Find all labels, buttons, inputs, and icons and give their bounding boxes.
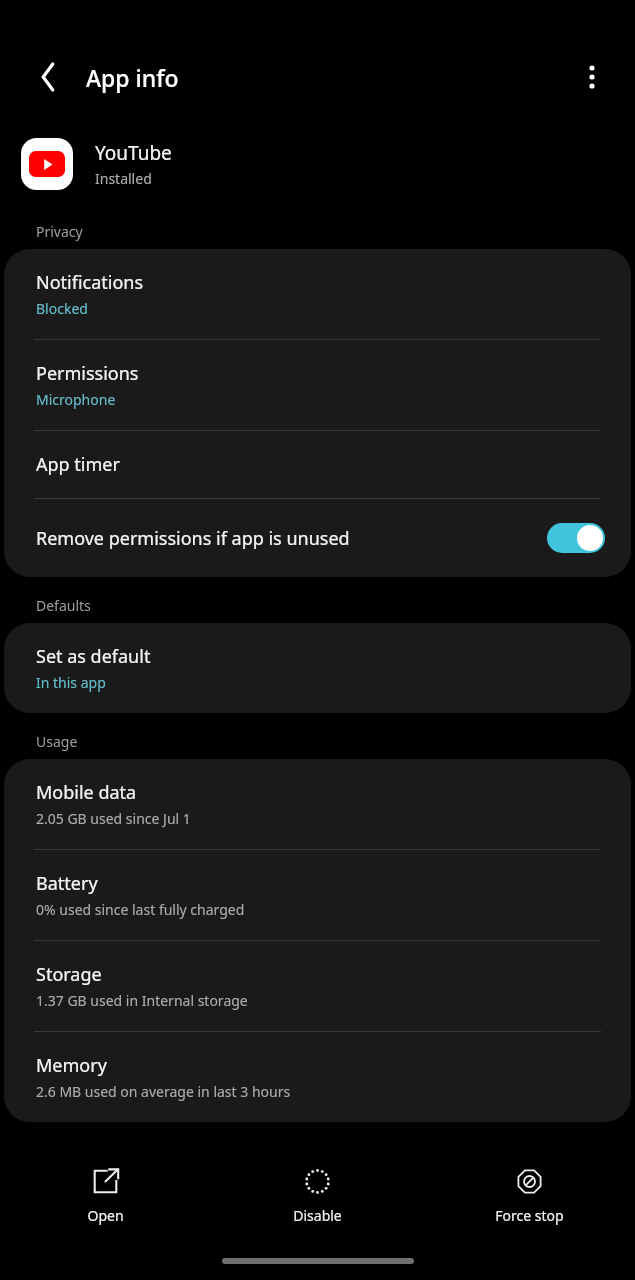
button[interactable]: Set as default	[4, 623, 631, 713]
staticText: Blocked	[36, 299, 88, 318]
staticText: Disable	[293, 1206, 342, 1225]
staticText: Mobile data	[36, 780, 137, 805]
button[interactable]: Remove permissions if app is unused	[4, 499, 631, 577]
staticText: Open	[87, 1206, 124, 1225]
staticText: Force stop	[495, 1206, 564, 1225]
staticText: 0% used since last fully charged	[36, 900, 245, 919]
other: Disable	[304, 1168, 331, 1195]
button[interactable]: Back	[25, 54, 71, 100]
button[interactable]: App timer	[4, 431, 631, 498]
staticText: App timer	[36, 452, 120, 477]
button[interactable]: Mobile data	[4, 759, 631, 849]
button[interactable]: Permissions	[4, 340, 631, 430]
staticText: In this app	[36, 673, 106, 692]
button[interactable]: More options	[569, 54, 615, 100]
staticText: Privacy	[36, 222, 83, 241]
staticText: YouTube	[95, 140, 172, 166]
button[interactable]: Battery	[4, 850, 631, 940]
staticText: Microphone	[36, 390, 116, 409]
staticText: App info	[86, 62, 179, 93]
button[interactable]: Force stop	[423, 1162, 635, 1231]
staticText: Defaults	[36, 596, 91, 615]
other: Force stop	[516, 1168, 543, 1195]
button[interactable]: Notifications	[4, 249, 631, 339]
staticText: Permissions	[36, 361, 139, 386]
staticText: Remove permissions if app is unused	[36, 526, 547, 551]
staticText: Storage	[36, 962, 102, 987]
staticText: Notifications	[36, 270, 144, 295]
staticText: Set as default	[36, 644, 151, 669]
button[interactable]: Disable	[211, 1162, 423, 1231]
other: Open	[92, 1168, 119, 1195]
button[interactable]: Memory	[4, 1032, 631, 1122]
staticText: 1.37 GB used in Internal storage	[36, 991, 248, 1010]
button[interactable]: Open	[0, 1162, 211, 1231]
button[interactable]: YouTube	[21, 138, 614, 190]
staticText: Usage	[36, 732, 78, 751]
staticText: 2.6 MB used on average in last 3 hours	[36, 1082, 291, 1101]
button[interactable]: Storage	[4, 941, 631, 1031]
staticText: Battery	[36, 871, 98, 896]
staticText: Memory	[36, 1053, 107, 1078]
staticText: Installed	[95, 169, 152, 188]
staticText: 2.05 GB used since Jul 1	[36, 809, 191, 828]
